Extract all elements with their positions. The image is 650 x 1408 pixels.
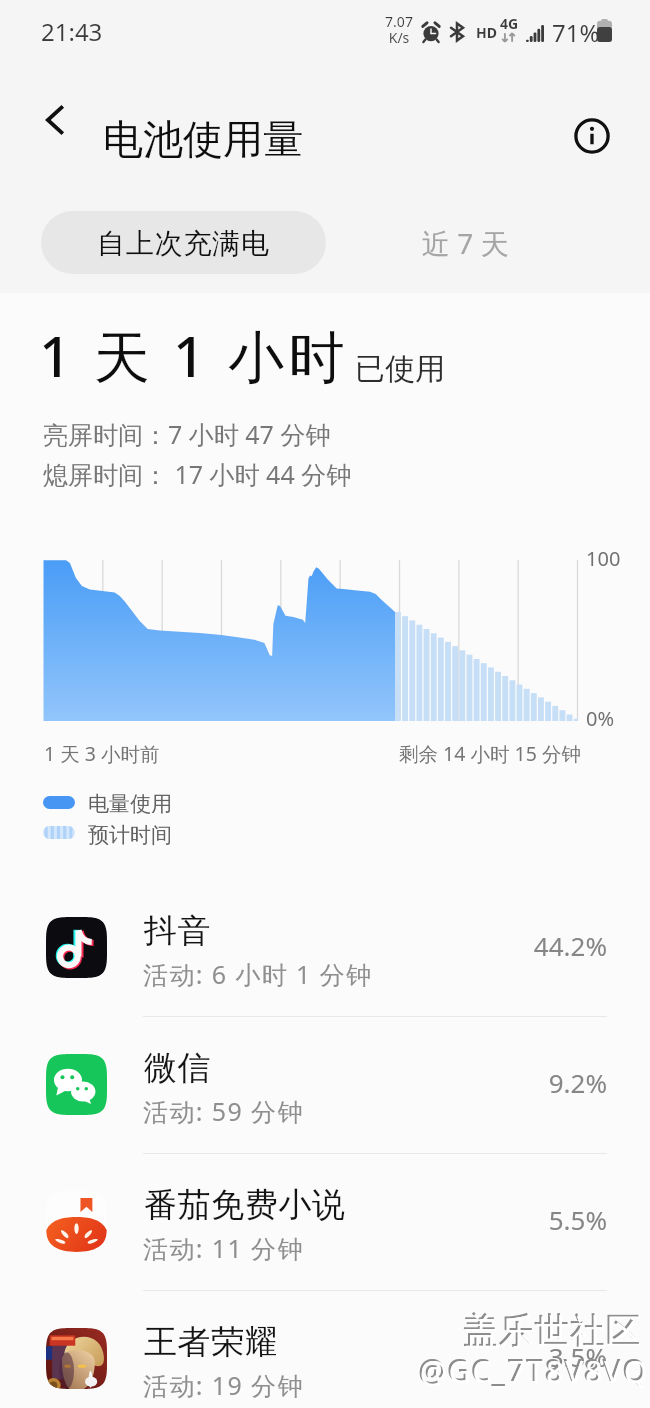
- button[interactable]: Back: [28, 92, 84, 148]
- staticText: 电量使用: [88, 791, 172, 817]
- staticText: 王者荣耀: [144, 1321, 279, 1363]
- staticText: 番茄免费小说: [144, 1184, 346, 1226]
- staticText: 活动: 19 分钟: [143, 1368, 304, 1402]
- button[interactable]: 王者荣耀: [0, 1290, 650, 1408]
- staticText: 抖音: [144, 910, 212, 952]
- staticText: 预计时间: [88, 822, 172, 848]
- staticText: HD: [476, 23, 497, 42]
- staticText: 活动: 11 分钟: [143, 1231, 304, 1265]
- staticText: 微信: [144, 1047, 212, 1089]
- staticText: 电池使用量: [103, 114, 303, 164]
- staticText: 5.5%: [460, 1202, 607, 1237]
- staticText: 1 天 3 小时前: [44, 740, 160, 767]
- staticText: 自上次充满电: [97, 226, 270, 261]
- staticText: K/s: [385, 28, 413, 47]
- staticText: 1 天 1 小时: [39, 317, 349, 393]
- staticText: @GC_7T8V8VQ: [420, 1351, 650, 1392]
- staticText: 3.5%: [460, 1339, 607, 1374]
- button[interactable]: 近 7 天: [370, 211, 560, 274]
- staticText: 熄屏时间： 17 小时 44 分钟: [43, 457, 352, 491]
- button[interactable]: 抖音: [0, 879, 650, 1016]
- button[interactable]: Information: [564, 108, 620, 164]
- staticText: 44.2%: [460, 928, 607, 963]
- staticText: 71%: [552, 16, 600, 49]
- staticText: 4G: [500, 14, 519, 33]
- staticText: 0%: [586, 705, 615, 732]
- staticText: 9.2%: [460, 1065, 607, 1100]
- staticText: 近 7 天: [422, 224, 509, 262]
- staticText: 100: [586, 545, 621, 572]
- staticText: @GC_7T8V8VQ: [418, 1349, 648, 1390]
- staticText: 盖乐世社区: [464, 1310, 643, 1354]
- staticText: 盖乐世社区: [462, 1308, 641, 1352]
- staticText: 活动: 59 分钟: [143, 1094, 304, 1128]
- button[interactable]: 自上次充满电: [41, 211, 326, 274]
- staticText: 活动: 6 小时 1 分钟: [143, 957, 373, 991]
- staticText: 已使用: [355, 350, 445, 388]
- staticText: 剩余 14 小时 15 分钟: [399, 740, 581, 767]
- button[interactable]: 番茄免费小说: [0, 1153, 650, 1290]
- staticText: 7.07: [385, 12, 413, 31]
- button[interactable]: 微信: [0, 1016, 650, 1153]
- staticText: 21:43: [41, 15, 103, 48]
- staticText: 亮屏时间：7 小时 47 分钟: [43, 417, 331, 451]
